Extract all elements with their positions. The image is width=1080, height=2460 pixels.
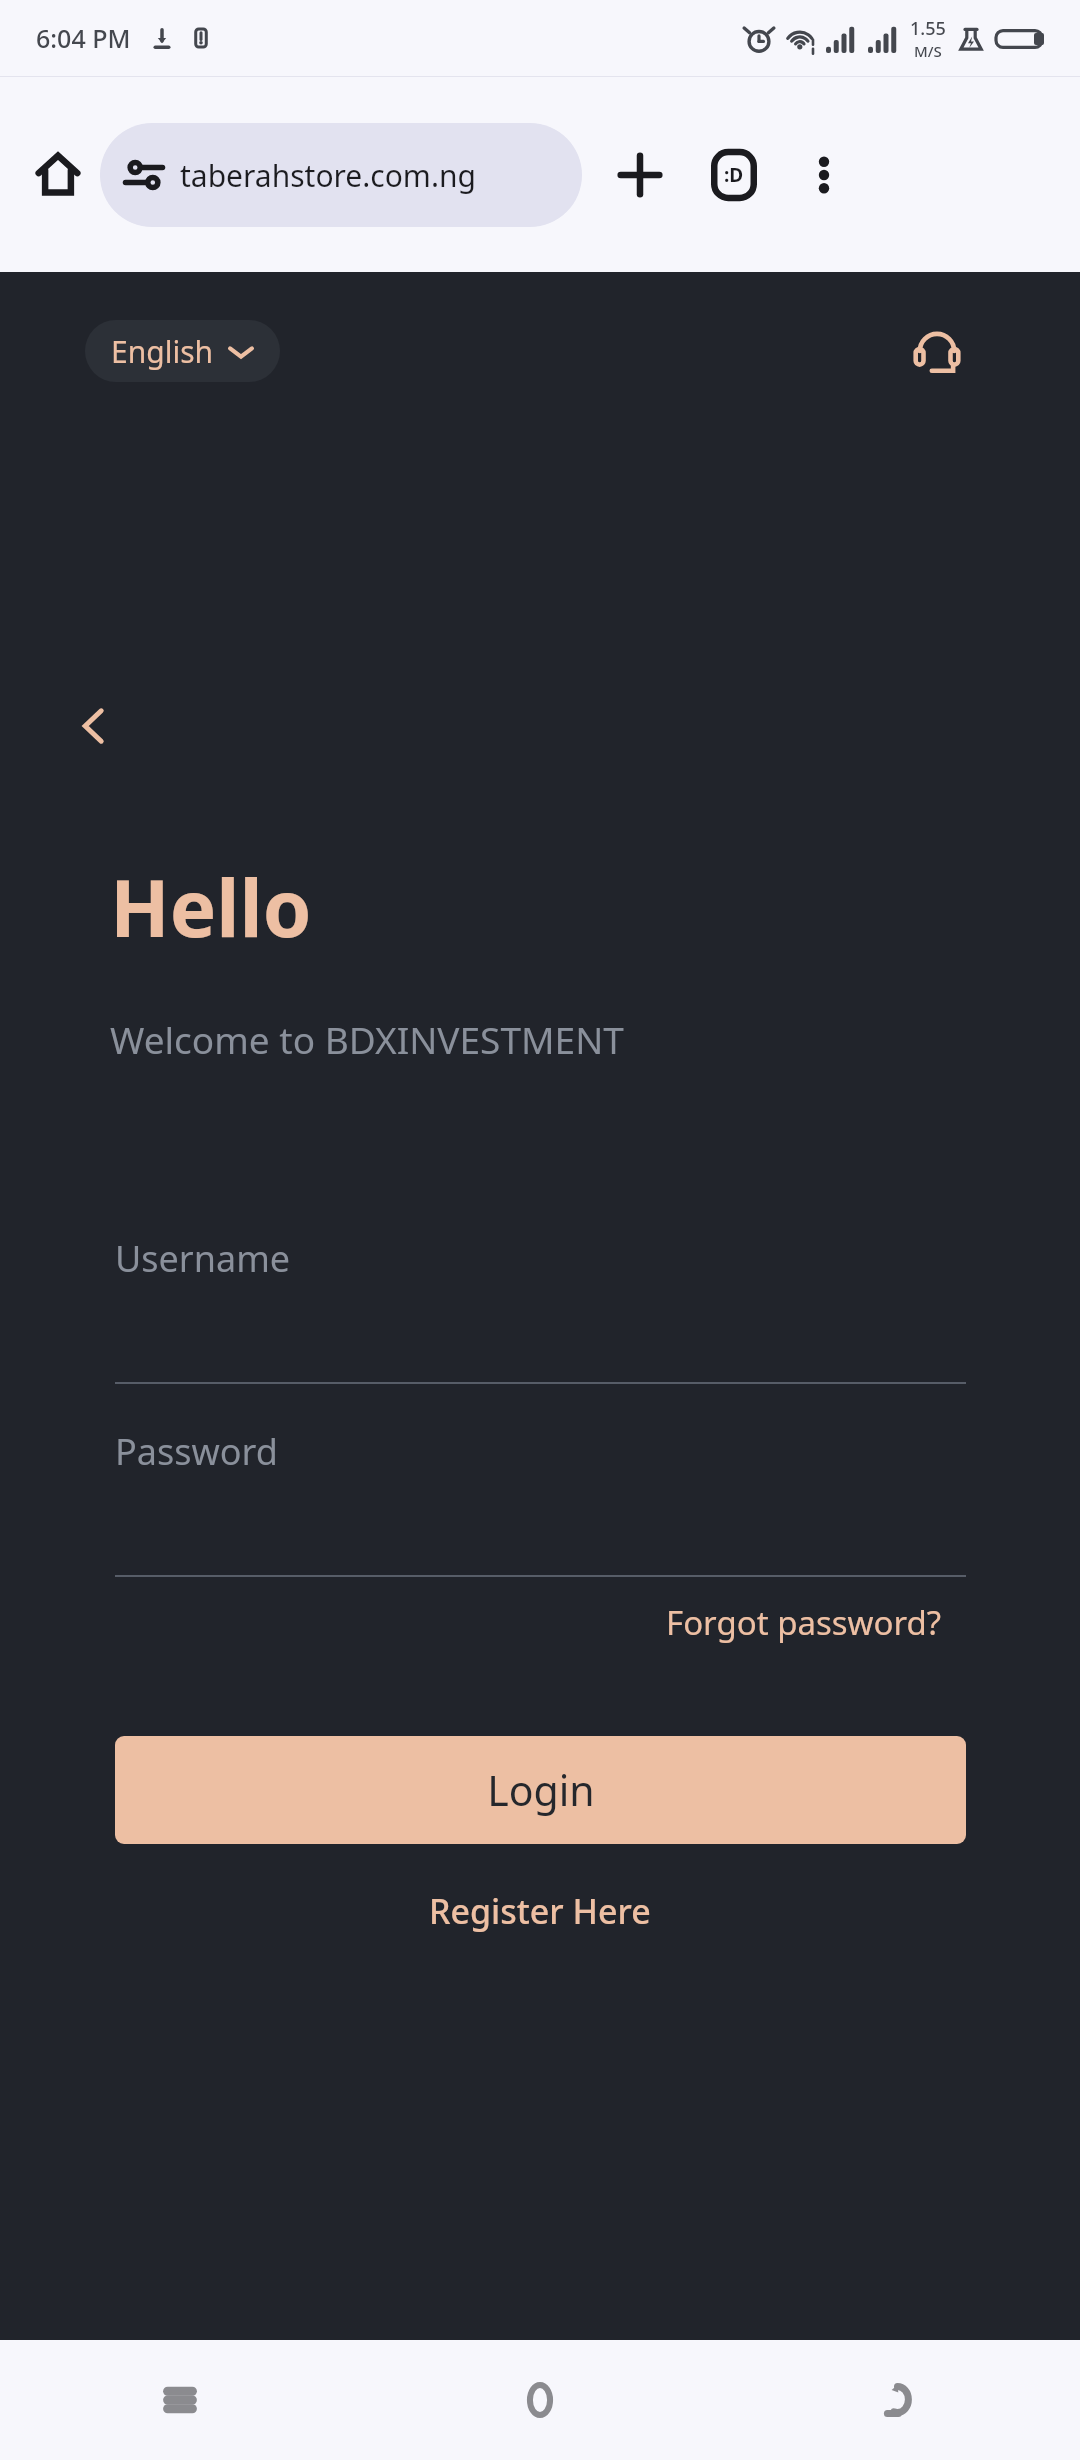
button[interactable]: Username — [115, 1234, 966, 1384]
staticText: Welcome to BDXINVESTMENT — [110, 1014, 624, 1064]
staticText: Hello — [110, 854, 312, 960]
staticText: English — [111, 331, 214, 372]
button[interactable]: Back — [720, 2340, 1080, 2460]
button[interactable]: Login — [115, 1736, 966, 1844]
staticText: Username — [115, 1234, 291, 1283]
staticText: Password — [115, 1427, 278, 1476]
button[interactable]: Home — [16, 133, 100, 217]
staticText: :D — [724, 162, 744, 188]
button[interactable]: taberahstore.com.ng — [100, 123, 582, 227]
button[interactable]: Tabs — [690, 131, 778, 219]
button[interactable]: English — [85, 320, 280, 382]
staticText: Forgot password? — [666, 1600, 942, 1645]
button[interactable]: More options — [782, 133, 866, 217]
button[interactable]: Register Here — [415, 1880, 665, 1942]
button[interactable]: Home — [360, 2340, 720, 2460]
staticText: M/S — [914, 41, 942, 61]
staticText: taberahstore.com.ng — [180, 155, 476, 196]
button[interactable]: New tab — [596, 131, 684, 219]
button[interactable]: Password — [115, 1427, 966, 1577]
staticText: Login — [487, 1762, 595, 1818]
button[interactable]: Forgot password? — [660, 1594, 948, 1651]
staticText: 1.55 — [910, 16, 946, 41]
staticText: Register Here — [429, 1888, 651, 1934]
button[interactable]: Back — [52, 684, 136, 768]
staticText: 6:04 PM — [36, 21, 131, 55]
button[interactable]: Customer support — [896, 310, 978, 392]
button[interactable]: Recent apps — [0, 2340, 360, 2460]
